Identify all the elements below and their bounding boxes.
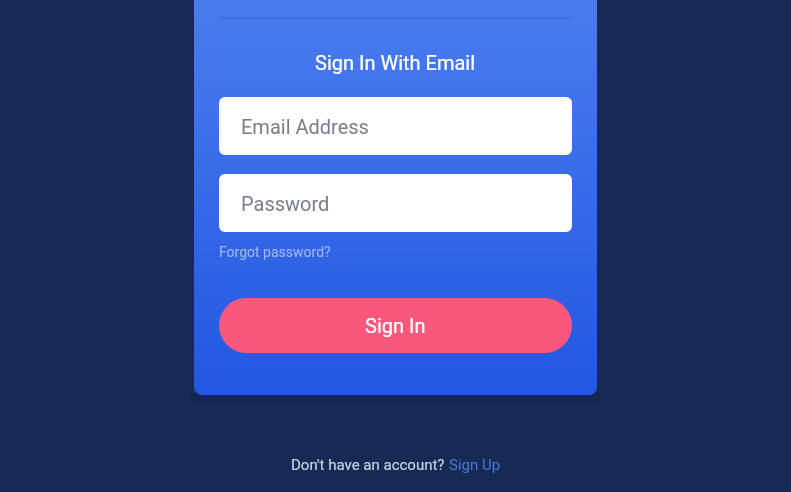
staticText: Email Address bbox=[241, 115, 369, 138]
button[interactable]: Forgot password? bbox=[219, 244, 331, 260]
button[interactable]: Sign Up bbox=[449, 456, 501, 474]
button[interactable]: Sign In bbox=[219, 298, 572, 353]
button[interactable]: Password bbox=[219, 174, 572, 232]
staticText: Don't have an account? bbox=[291, 456, 449, 474]
staticText: Sign In With Email bbox=[315, 51, 476, 74]
staticText: Password bbox=[241, 192, 330, 215]
button[interactable]: Email Address bbox=[219, 97, 572, 155]
staticText: Sign In bbox=[365, 314, 426, 337]
